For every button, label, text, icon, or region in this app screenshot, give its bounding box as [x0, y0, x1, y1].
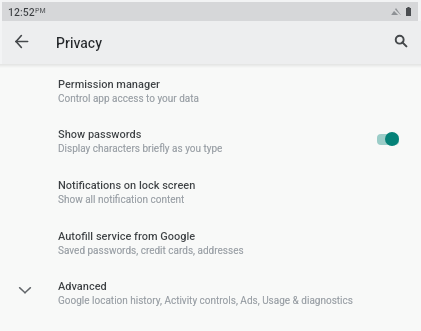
staticText: Saved passwords, credit cards, addresses [58, 245, 244, 257]
staticText: PM [35, 7, 46, 15]
button[interactable]: Toggle Show passwords [376, 132, 399, 146]
staticText: Show passwords [58, 128, 142, 141]
staticText: Google location history, Activity contro… [58, 295, 353, 307]
button[interactable]: Navigate up [7, 27, 35, 55]
button[interactable]: Permission manager [0, 67, 421, 113]
staticText: Notifications on lock screen [58, 179, 196, 192]
staticText: Display characters briefly as you type [58, 143, 223, 155]
staticText: Permission manager [58, 78, 160, 91]
staticText: Control app access to your data [58, 93, 199, 105]
staticText: Show all notification content [58, 194, 185, 206]
button[interactable]: Search [387, 27, 415, 55]
staticText: Advanced [58, 280, 107, 293]
button[interactable]: Autofill service from Google [0, 219, 421, 265]
staticText: Privacy [56, 35, 103, 51]
button[interactable]: Advanced, expand [0, 269, 421, 315]
button[interactable]: Show passwords [0, 117, 421, 163]
button[interactable]: Notifications on lock screen [0, 168, 421, 214]
staticText: Autofill service from Google [58, 230, 196, 243]
staticText: 12:52 [8, 6, 35, 18]
